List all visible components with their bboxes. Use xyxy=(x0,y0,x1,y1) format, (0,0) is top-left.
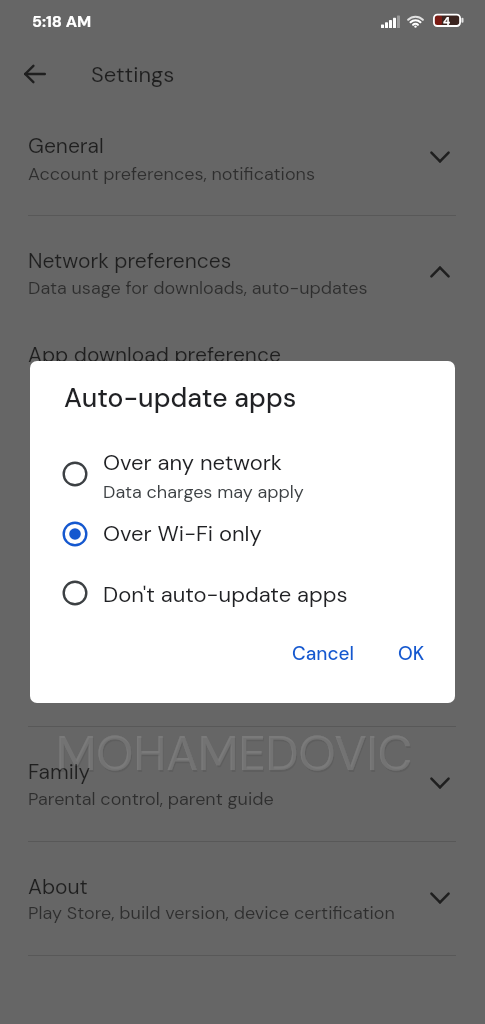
staticText: Auto-update apps xyxy=(64,381,297,416)
staticText: MOHAMEDOVIC xyxy=(56,722,413,784)
staticText: Network preferences xyxy=(28,247,232,274)
staticText: Parental control, parent guide xyxy=(28,787,274,810)
button[interactable] xyxy=(30,508,455,560)
staticText: MOHAMEDOVIC xyxy=(57,724,414,786)
button[interactable] xyxy=(0,115,485,215)
staticText: Don't auto-update apps xyxy=(103,580,348,609)
button[interactable] xyxy=(0,855,485,950)
staticText: Over Wi-Fi only xyxy=(103,519,262,548)
staticText: Play Store, build version, device certif… xyxy=(28,901,395,924)
staticText: OK xyxy=(398,641,425,666)
button[interactable] xyxy=(0,740,485,835)
staticText: 5:18 AM xyxy=(32,11,92,32)
staticText: Cancel xyxy=(292,641,355,666)
button[interactable] xyxy=(30,448,455,500)
staticText: Account preferences, notifications xyxy=(28,162,315,185)
staticText: About xyxy=(28,873,88,900)
staticText: Over any network xyxy=(103,448,282,477)
staticText: Family xyxy=(28,758,91,785)
button[interactable] xyxy=(0,228,485,318)
button[interactable]: Cancel xyxy=(283,632,364,674)
staticText: General xyxy=(28,132,104,159)
button[interactable] xyxy=(30,567,455,619)
button[interactable]: Expand About xyxy=(418,876,462,920)
button[interactable]: Collapse Network preferences xyxy=(418,250,462,294)
staticText: 4 xyxy=(443,14,451,28)
button[interactable]: Expand Family xyxy=(418,761,462,805)
staticText: Settings xyxy=(91,60,175,89)
staticText: Data usage for downloads, auto-updates xyxy=(28,276,368,299)
staticText: Data charges may apply xyxy=(103,480,304,503)
button[interactable]: OK xyxy=(386,632,437,674)
staticText: App download preference xyxy=(28,341,281,368)
button[interactable]: Expand General xyxy=(418,135,462,179)
button[interactable]: Back xyxy=(13,52,57,96)
